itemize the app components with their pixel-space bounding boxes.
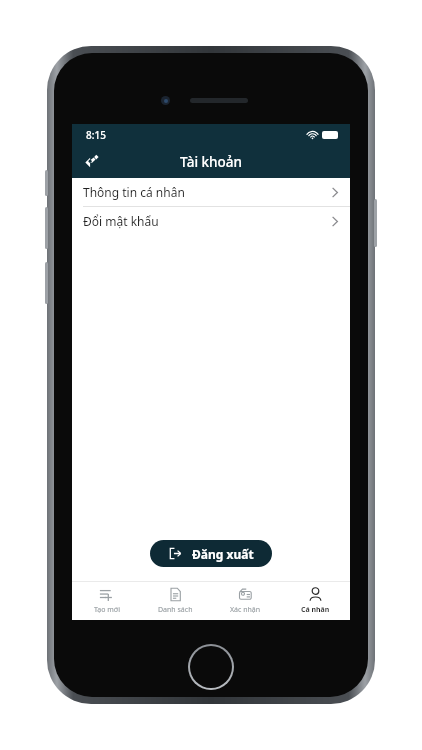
button[interactable]: Đăng xuất bbox=[150, 540, 272, 567]
staticText: Tài khoản bbox=[180, 153, 242, 171]
button[interactable]: Đổi mật khẩu bbox=[72, 207, 350, 235]
button[interactable]: Xác nhận bbox=[210, 582, 280, 620]
staticText: Cá nhân bbox=[301, 605, 330, 615]
button[interactable]: Menu bbox=[81, 150, 105, 174]
staticText: Xác nhận bbox=[230, 605, 261, 615]
button[interactable]: Tạo mới bbox=[72, 582, 141, 620]
staticText: Đổi mật khẩu bbox=[83, 213, 159, 229]
button[interactable]: Danh sách bbox=[141, 582, 210, 620]
button[interactable]: Thông tin cá nhân bbox=[72, 178, 350, 206]
staticText: Đăng xuất bbox=[192, 546, 254, 562]
staticText: Thông tin cá nhân bbox=[83, 184, 185, 200]
button[interactable]: Cá nhân bbox=[280, 582, 350, 620]
staticText: Danh sách bbox=[158, 605, 193, 615]
staticText: 8:15 bbox=[86, 128, 106, 142]
staticText: Tạo mới bbox=[94, 605, 120, 615]
